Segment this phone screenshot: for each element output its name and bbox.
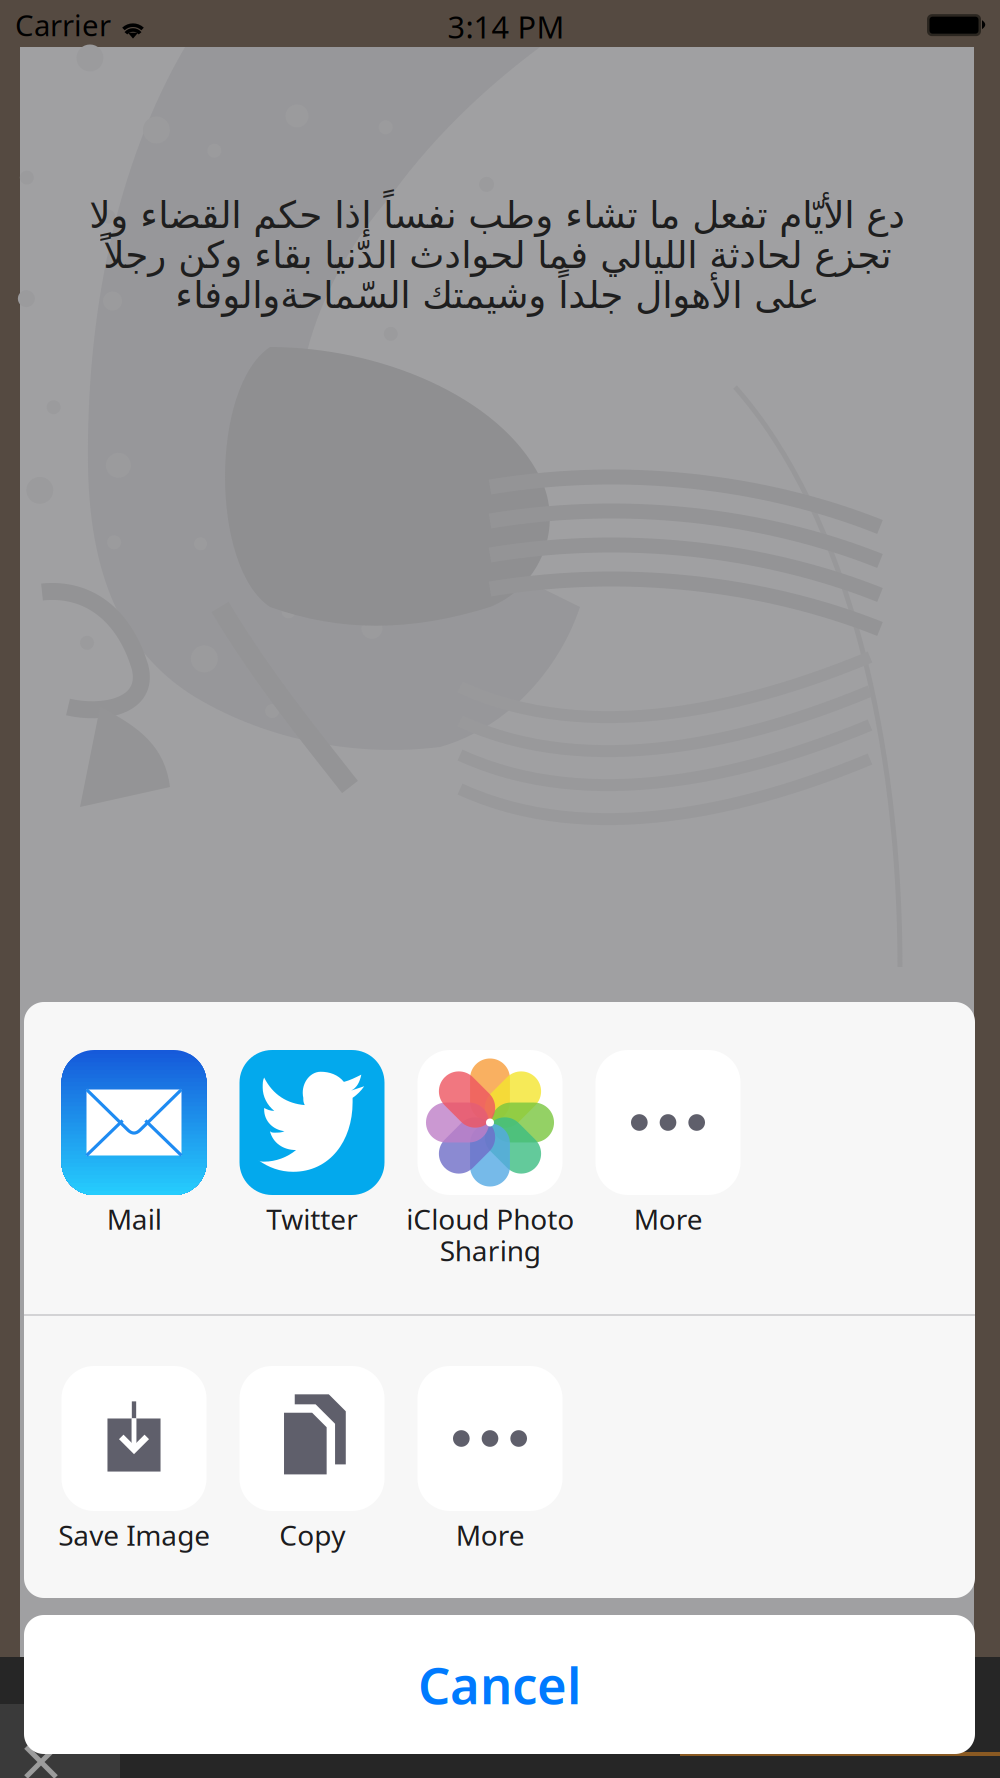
button[interactable]: More (579, 1050, 757, 1314)
button[interactable]: iCloud Photo Sharing (401, 1050, 579, 1314)
staticText: More (633, 1203, 702, 1235)
staticText: Twitter (266, 1203, 358, 1235)
button[interactable]: Mail (45, 1050, 223, 1314)
button[interactable]: Cancel (24, 1615, 975, 1754)
staticText: Save Image (58, 1519, 210, 1551)
staticText: 3:14 PM (447, 9, 564, 44)
button[interactable]: More (401, 1366, 579, 1598)
button[interactable]: Twitter (223, 1050, 401, 1314)
staticText: Copy (279, 1519, 345, 1551)
staticText: Carrier (15, 8, 111, 41)
staticText: iCloud Photo Sharing (406, 1203, 574, 1266)
button[interactable]: Copy (223, 1366, 401, 1598)
staticText: Mail (106, 1203, 161, 1235)
staticText: Cancel (418, 1656, 581, 1713)
staticText: More (455, 1519, 524, 1551)
staticText: دع الأيّام تفعل ما تشاء وطب نفساً إذا حك… (89, 195, 905, 315)
button[interactable]: Save Image (45, 1366, 223, 1598)
